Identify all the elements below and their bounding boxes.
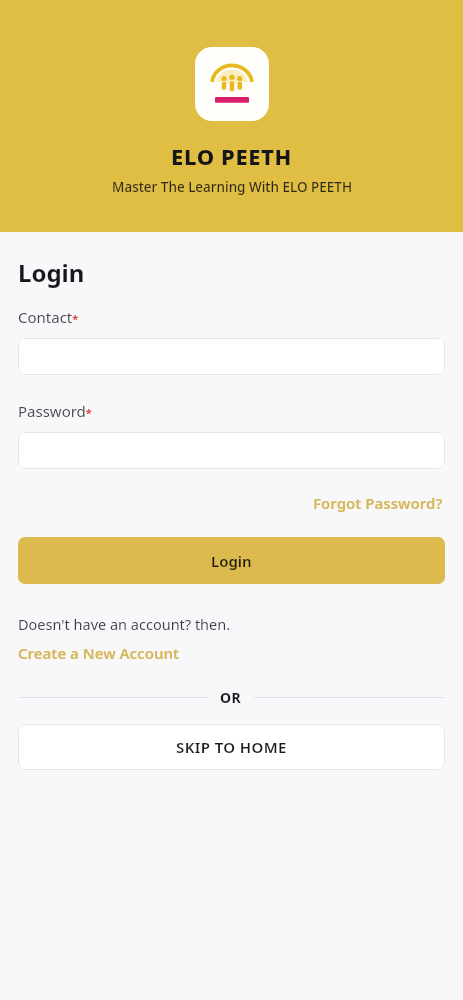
button[interactable]: Forgot Password? bbox=[311, 491, 445, 515]
staticText: Doesn't have an account? then. bbox=[18, 614, 231, 634]
staticText: SKIP TO HOME bbox=[176, 737, 287, 757]
button[interactable]: Login bbox=[18, 537, 445, 584]
staticText: OR bbox=[220, 688, 242, 707]
button[interactable]: Text input field bbox=[18, 338, 445, 375]
staticText: Master The Learning With ELO PEETH bbox=[112, 178, 352, 196]
staticText: Login bbox=[211, 551, 252, 571]
button[interactable]: Create a New Account bbox=[18, 642, 180, 664]
staticText: Password* bbox=[18, 401, 92, 421]
staticText: ELO PEETH bbox=[171, 141, 292, 171]
button[interactable]: Text input field bbox=[18, 432, 445, 469]
staticText: Contact* bbox=[18, 307, 79, 327]
button[interactable]: SKIP TO HOME bbox=[18, 724, 445, 770]
staticText: Login bbox=[18, 256, 85, 289]
staticText: Forgot Password? bbox=[313, 493, 443, 513]
staticText: Create a New Account bbox=[18, 643, 180, 663]
